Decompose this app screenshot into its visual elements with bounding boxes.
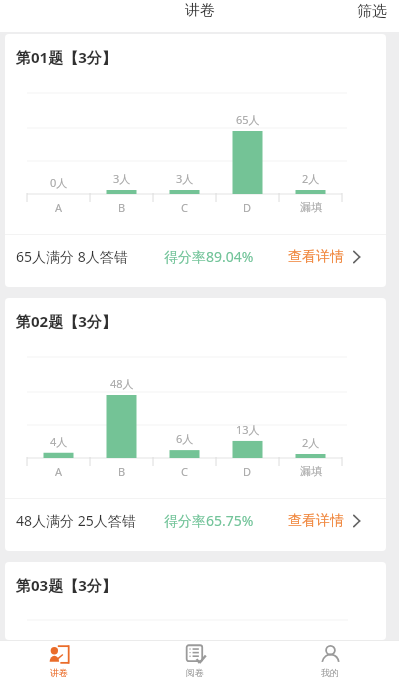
staticText: 2人 (302, 435, 320, 450)
staticText: 讲卷 (50, 667, 68, 678)
button[interactable]: 阅卷 (150, 641, 240, 681)
staticText: 得分率89.04% (164, 247, 254, 266)
staticText: 漏填 (300, 200, 322, 214)
button[interactable]: 筛选 (343, 0, 399, 27)
staticText: D (243, 200, 252, 215)
staticText: B (118, 200, 126, 215)
staticText: 第02题【3分】 (16, 311, 117, 331)
staticText: 4人 (50, 434, 68, 449)
staticText: 65人满分 8人答错 (16, 247, 128, 266)
button[interactable]: 第03题【3分】 (5, 562, 386, 640)
button[interactable]: 第01题【3分】 (5, 34, 386, 287)
staticText: 65人 (236, 112, 260, 127)
staticText: C (181, 200, 188, 215)
button[interactable]: 讲卷 (14, 641, 104, 681)
staticText: 第01题【3分】 (16, 47, 117, 67)
staticText: 得分率65.75% (164, 511, 254, 530)
staticText: 第03题【3分】 (16, 575, 117, 595)
staticText: 2人 (302, 171, 320, 186)
button[interactable]: 查看详情 (283, 242, 367, 272)
button[interactable]: 查看详情 (283, 506, 367, 536)
staticText: 48人满分 25人答错 (16, 511, 136, 530)
staticText: 48人 (110, 376, 134, 391)
staticText: 13人 (236, 422, 260, 437)
staticText: 漏填 (300, 464, 322, 478)
staticText: D (243, 464, 252, 479)
staticText: 6人 (176, 431, 194, 446)
staticText: 筛选 (357, 2, 387, 21)
staticText: A (55, 464, 63, 479)
other: 讲卷 (49, 644, 70, 665)
staticText: 3人 (113, 171, 131, 186)
staticText: B (118, 464, 126, 479)
other: 阅卷 (185, 644, 206, 665)
staticText: 0人 (50, 175, 68, 190)
staticText: 我的 (321, 667, 339, 678)
staticText: 3人 (176, 171, 194, 186)
staticText: A (55, 200, 63, 215)
staticText: 查看详情 (288, 512, 344, 530)
button[interactable]: 第02题【3分】 (5, 298, 386, 551)
staticText: 讲卷 (185, 1, 215, 20)
button[interactable]: 我的 (285, 641, 375, 681)
staticText: 查看详情 (288, 248, 344, 266)
staticText: C (181, 464, 188, 479)
other: 我的 (320, 644, 341, 665)
staticText: 阅卷 (186, 667, 204, 678)
